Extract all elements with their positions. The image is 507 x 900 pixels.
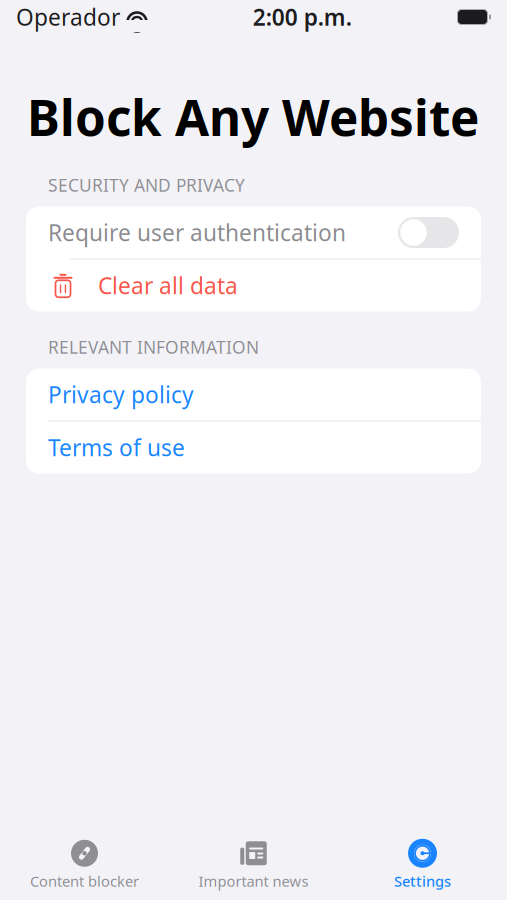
- staticText: Clear all data: [98, 270, 238, 301]
- staticText: Content blocker: [30, 871, 139, 891]
- staticText: Operador: [16, 2, 120, 32]
- staticText: Require user authentication: [48, 217, 346, 248]
- staticText: Privacy policy: [48, 379, 194, 410]
- button[interactable]: Clear all data: [26, 259, 481, 311]
- button[interactable]: Privacy policy: [26, 368, 481, 420]
- staticText: Important news: [198, 871, 308, 891]
- button[interactable]: Content blocker: [0, 833, 169, 897]
- staticText: Terms of use: [48, 432, 185, 463]
- staticText: SECURITY AND PRIVACY: [48, 173, 245, 196]
- button[interactable]: Important news: [169, 833, 338, 897]
- staticText: Settings: [394, 871, 451, 891]
- staticText: RELEVANT INFORMATION: [48, 335, 259, 358]
- staticText: 2:00 p.m.: [253, 2, 352, 32]
- button[interactable]: Require user authentication: [26, 206, 481, 258]
- staticText: Block Any Website: [27, 84, 479, 149]
- button[interactable]: Settings: [338, 833, 507, 897]
- button[interactable]: Terms of use: [26, 421, 481, 473]
